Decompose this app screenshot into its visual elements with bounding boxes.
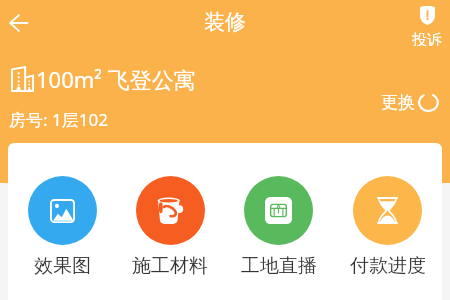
staticText: 装修 (204, 9, 246, 35)
button[interactable]: 投诉 (412, 6, 442, 46)
button[interactable]: 施工材料 (116, 176, 224, 278)
button[interactable]: Back (0, 5, 36, 41)
staticText: 施工材料 (132, 254, 208, 278)
button[interactable]: 工地直播 (224, 176, 333, 278)
staticText: 更换 (381, 92, 415, 113)
button[interactable]: 效果图 (8, 176, 116, 278)
staticText: 100m² 飞登公寓 (36, 64, 196, 94)
staticText: 付款进度 (350, 254, 426, 278)
button[interactable]: 更换 (381, 92, 439, 113)
staticText: 投诉 (412, 31, 442, 46)
button[interactable]: 付款进度 (333, 176, 442, 278)
staticText: 房号: 1层102 (9, 108, 108, 131)
staticText: 效果图 (34, 254, 91, 278)
staticText: 工地直播 (241, 254, 317, 278)
